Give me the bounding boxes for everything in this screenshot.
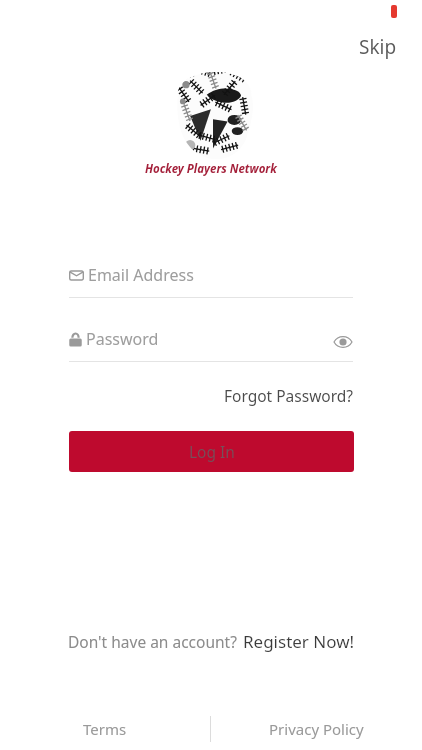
button[interactable]: Password <box>69 328 353 350</box>
staticText: Password <box>86 328 159 350</box>
staticText: Email Address <box>88 264 194 286</box>
button[interactable]: Privacy Policy <box>259 713 374 745</box>
staticText: Don't have an account? <box>68 631 237 652</box>
staticText: Skip <box>359 34 397 60</box>
button[interactable]: Register Now! <box>243 630 355 653</box>
staticText: Hockey Players Network <box>145 161 277 177</box>
staticText: Privacy Policy <box>269 719 364 739</box>
button[interactable]: Show password <box>330 329 356 355</box>
button[interactable]: Terms <box>73 713 137 745</box>
staticText: Log In <box>189 441 235 462</box>
staticText: Forgot Password? <box>224 385 354 406</box>
button[interactable]: Log In <box>69 431 354 472</box>
staticText: Terms <box>83 719 127 739</box>
staticText: Register Now! <box>243 630 355 653</box>
button[interactable]: Email Address <box>69 264 353 298</box>
button[interactable]: Skip <box>345 28 411 66</box>
button[interactable]: Forgot Password? <box>218 381 360 410</box>
